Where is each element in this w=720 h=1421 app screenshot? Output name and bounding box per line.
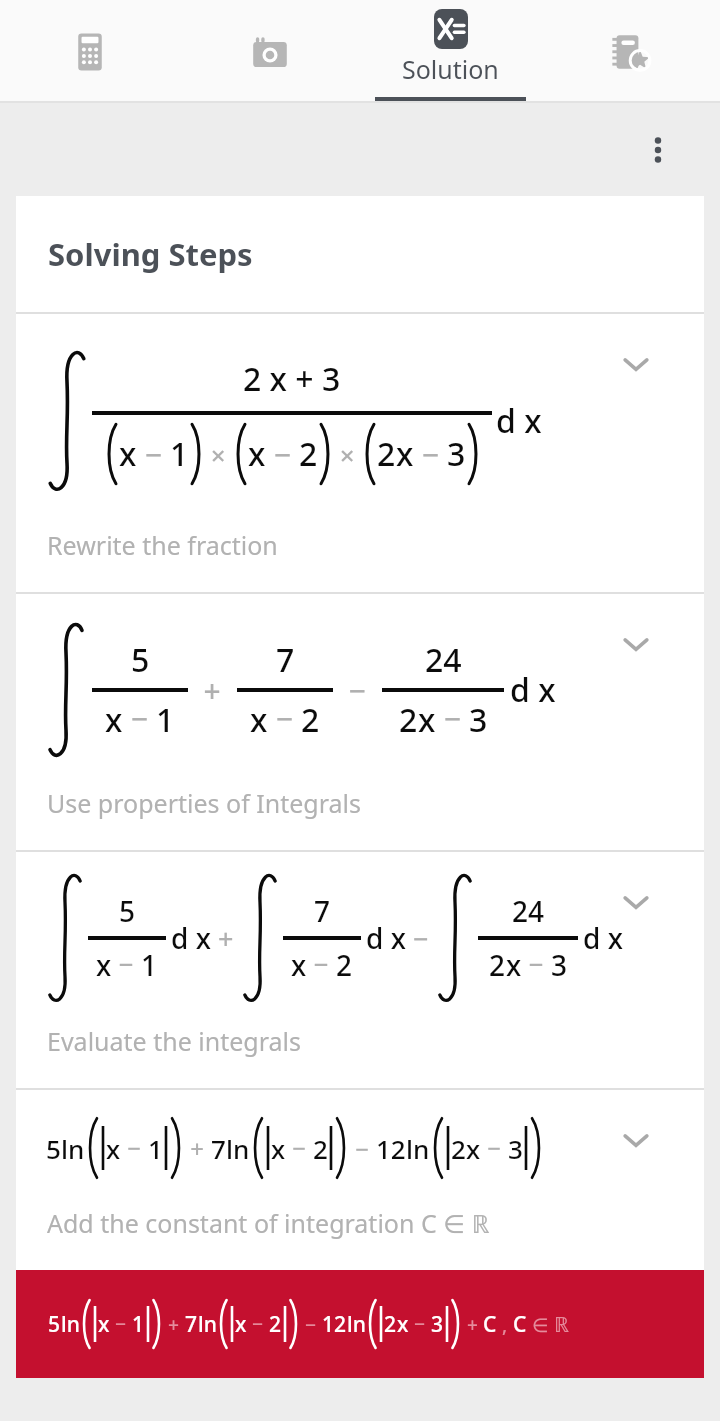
button[interactable]: More options <box>632 124 684 176</box>
staticText: Rewrite the fraction <box>47 528 278 562</box>
staticText: − <box>123 698 156 739</box>
staticText: 7 <box>185 1310 198 1339</box>
button[interactable]: Expand step <box>614 1118 658 1162</box>
staticText: − <box>268 698 301 739</box>
staticText: x <box>250 698 268 742</box>
staticText: x <box>506 946 522 984</box>
staticText: − <box>481 1131 508 1164</box>
staticText: 2 <box>301 698 320 742</box>
staticText: Solution <box>402 52 499 86</box>
staticText: 5 <box>46 1131 61 1166</box>
staticText: Add the constant of integration C ∈ ℝ <box>47 1206 490 1240</box>
staticText: 2 <box>336 946 353 984</box>
staticText: × <box>204 437 233 472</box>
staticText: + <box>188 670 237 711</box>
staticText: × <box>333 437 362 472</box>
staticText: 3 <box>431 1310 444 1339</box>
staticText: x <box>119 432 137 476</box>
button[interactable]: Expand step <box>614 880 658 924</box>
staticText: Evaluate the integrals <box>47 1024 301 1058</box>
staticText: 2 <box>269 1310 282 1339</box>
button[interactable]: 5 <box>16 1270 704 1378</box>
staticText: d x <box>496 399 542 443</box>
staticText: ln <box>347 1310 366 1339</box>
staticText: − <box>137 434 170 475</box>
staticText: 24 <box>512 892 545 930</box>
staticText: x <box>248 432 266 476</box>
staticText: x <box>291 946 307 984</box>
staticText: , <box>497 1312 513 1338</box>
button[interactable]: 5 <box>16 1090 704 1270</box>
staticText: 1 <box>141 946 158 984</box>
button[interactable]: Solution <box>360 0 540 103</box>
staticText: 7 <box>211 1131 226 1166</box>
staticText: 7 <box>314 892 331 930</box>
staticText: − <box>409 1310 431 1336</box>
staticText: 1 <box>148 1131 163 1166</box>
staticText: − <box>522 946 551 981</box>
staticText: 1 <box>170 432 189 476</box>
staticText: d x <box>583 919 623 957</box>
staticText: ln <box>61 1131 85 1166</box>
staticText: d x <box>510 668 556 712</box>
staticText: + <box>163 1311 185 1337</box>
staticText: 1 <box>156 698 175 742</box>
button[interactable]: Expand step <box>614 342 658 386</box>
button[interactable]: Camera <box>180 0 360 103</box>
staticText: Solving Steps <box>48 233 253 275</box>
staticText: 2 <box>451 1131 466 1166</box>
button[interactable]: Expand step <box>614 622 658 666</box>
button[interactable]: 5 <box>16 594 704 850</box>
staticText: x <box>396 432 414 476</box>
staticText: ln <box>198 1310 217 1339</box>
staticText: + <box>462 1312 483 1338</box>
staticText: d x <box>171 919 211 957</box>
staticText: − <box>121 1131 148 1164</box>
staticText: − <box>349 1132 376 1165</box>
staticText: 5 <box>119 892 136 930</box>
staticText: x <box>106 1131 121 1166</box>
staticText: x <box>98 1310 110 1339</box>
staticText: − <box>286 1131 313 1164</box>
staticText: ln <box>226 1131 250 1166</box>
button[interactable]: Solving Steps <box>16 196 704 312</box>
staticText: ∈ <box>527 1312 554 1338</box>
staticText: − <box>112 946 141 981</box>
staticText: C <box>513 1310 527 1339</box>
staticText: 5 <box>131 638 150 682</box>
staticText: 2 <box>313 1131 328 1166</box>
staticText: 3 <box>469 698 488 742</box>
button[interactable]: 2 x + 3 <box>16 314 704 592</box>
staticText: − <box>247 1310 269 1336</box>
staticText: − <box>307 946 336 981</box>
staticText: − <box>406 920 436 957</box>
staticText: − <box>414 434 447 475</box>
staticText: 2 <box>299 432 318 476</box>
staticText: 5 <box>48 1310 61 1339</box>
staticText: x <box>235 1310 247 1339</box>
staticText: x <box>96 946 112 984</box>
staticText: 3 <box>551 946 568 984</box>
button[interactable]: 5 <box>16 852 704 1088</box>
staticText: x <box>466 1131 481 1166</box>
staticText: ln <box>406 1131 430 1166</box>
staticText: C <box>483 1310 497 1339</box>
staticText: x <box>105 698 123 742</box>
staticText: + <box>211 920 241 957</box>
staticText: − <box>333 670 382 711</box>
staticText: + <box>184 1132 211 1165</box>
staticText: x <box>418 698 436 742</box>
staticText: 12 <box>322 1310 347 1339</box>
staticText: 2 x + 3 <box>243 357 341 401</box>
staticText: x <box>271 1131 286 1166</box>
staticText: 2 <box>399 698 418 742</box>
staticText: 2 <box>377 432 396 476</box>
staticText: − <box>436 698 469 739</box>
staticText: 3 <box>447 432 466 476</box>
staticText: 12 <box>376 1131 406 1166</box>
button[interactable]: Bookmarks <box>540 0 720 103</box>
staticText: 3 <box>508 1131 523 1166</box>
staticText: Use properties of Integrals <box>47 786 361 820</box>
button[interactable]: Calculator <box>0 0 180 103</box>
staticText: 1 <box>132 1310 145 1339</box>
